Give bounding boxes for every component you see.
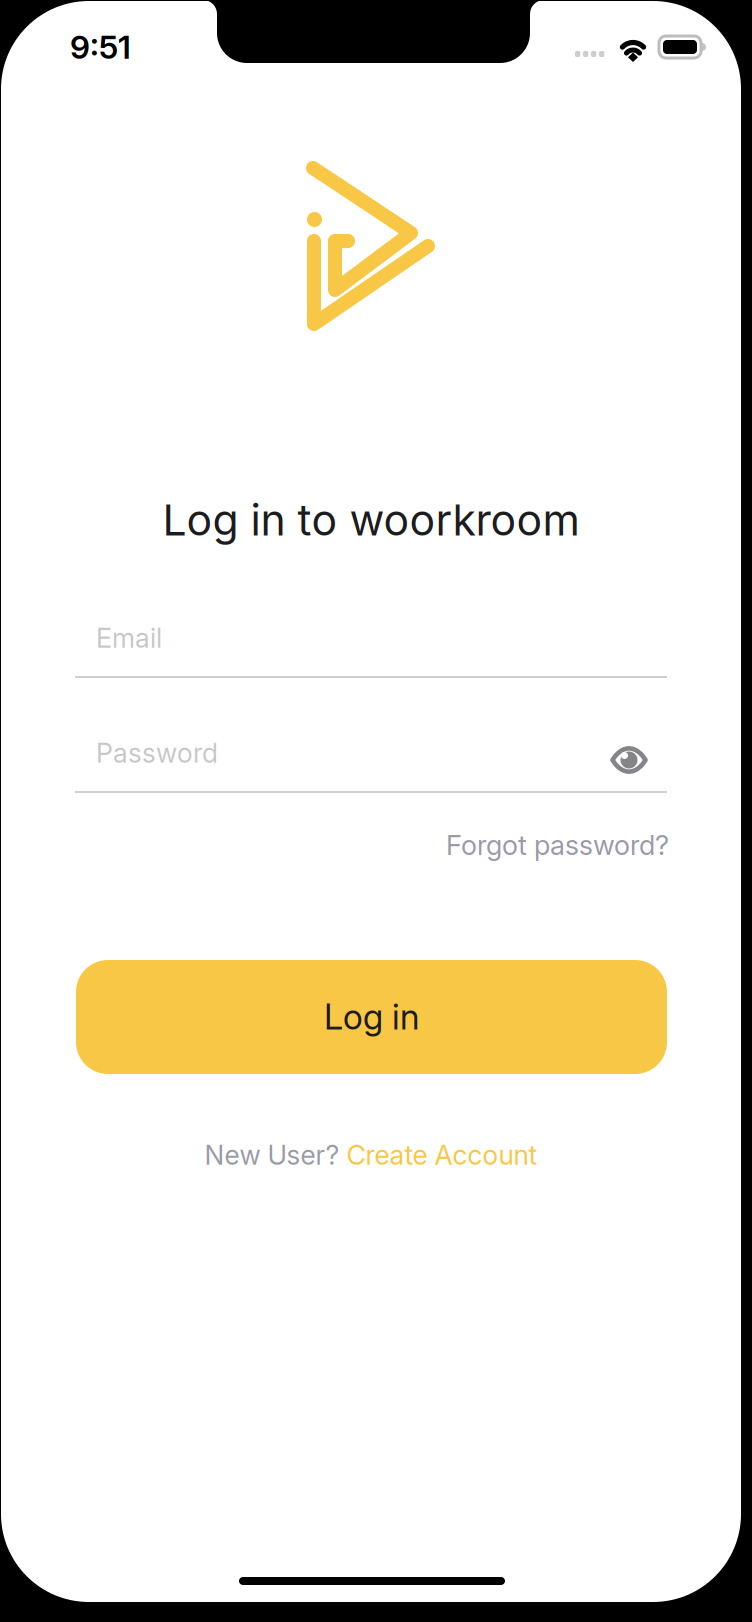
staticText: New User?: [204, 1139, 346, 1171]
button[interactable]: Forgot password?: [0, 0, 752, 1622]
button[interactable]: Log in: [0, 0, 752, 1622]
staticText: Create Account: [346, 1139, 537, 1171]
staticText: 9:51: [70, 28, 131, 66]
button[interactable]: Show password: [0, 0, 752, 1622]
staticText: Log in: [324, 996, 419, 1038]
button[interactable]: New User?: [0, 0, 752, 1622]
staticText: Log in to woorkroom: [162, 494, 579, 546]
staticText: Forgot password?: [446, 828, 669, 862]
staticText: Email: [96, 622, 162, 654]
staticText: Password: [96, 737, 218, 769]
